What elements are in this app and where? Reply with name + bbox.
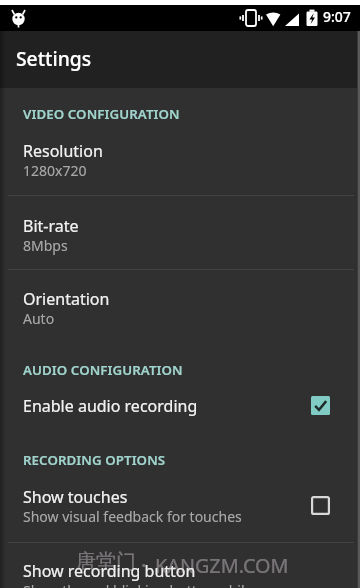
- staticText: 8Mbps: [23, 236, 68, 255]
- staticText: Enable audio recording: [23, 395, 198, 417]
- staticText: Settings: [16, 45, 92, 71]
- staticText: KANGZM.COM: [155, 552, 289, 579]
- staticText: Show recording button: [23, 560, 196, 582]
- staticText: Resolution: [23, 140, 103, 162]
- staticText: Orientation: [23, 288, 110, 310]
- button[interactable]: Show touches: [0, 468, 360, 542]
- button[interactable]: Resolution: [0, 122, 360, 195]
- button[interactable]: Orientation: [0, 270, 360, 342]
- staticText: Show visual feedback for touches: [23, 507, 242, 526]
- staticText: RECORDING OPTIONS: [23, 451, 166, 469]
- staticText: Show touches: [23, 486, 128, 508]
- staticText: Show the red blinking button while: [23, 581, 253, 588]
- staticText: Auto: [23, 309, 55, 328]
- button[interactable]: Enable audio recording: [0, 385, 360, 440]
- staticText: 9:07: [323, 7, 351, 26]
- button[interactable]: Bit-rate: [0, 197, 360, 269]
- staticText: VIDEO CONFIGURATION: [23, 105, 180, 123]
- staticText: Bit-rate: [23, 215, 79, 237]
- staticText: ·: [141, 551, 147, 580]
- staticText: 1280x720: [23, 161, 87, 180]
- staticText: AUDIO CONFIGURATION: [23, 361, 183, 379]
- staticText: 唐堂门: [76, 549, 136, 574]
- button[interactable]: Show recording button: [0, 542, 360, 588]
